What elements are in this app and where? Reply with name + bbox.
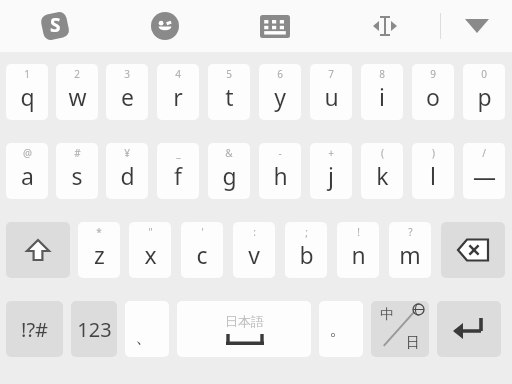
staticText: 123 [77,316,112,343]
button[interactable]: & [208,143,250,199]
staticText: 2 [74,67,80,81]
staticText: ( [381,146,384,160]
button[interactable]: " [129,222,171,278]
staticText: u [324,81,339,112]
button[interactable]: 6 [259,64,301,120]
staticText: g [222,160,237,191]
staticText: c [196,239,208,270]
staticText: ' [201,225,204,239]
button[interactable]: 3 [106,64,148,120]
staticText: z [94,239,105,270]
button[interactable]: 8 [361,64,403,120]
button[interactable]: _ [157,143,199,199]
staticText: s [71,160,83,191]
button[interactable]: # [56,143,98,199]
staticText: 5 [226,67,232,81]
button[interactable]: 7 [310,64,352,120]
staticText: 、 [135,326,153,349]
button[interactable]: Enter [437,301,501,357]
button[interactable]: 5 [208,64,250,120]
staticText: n [351,239,366,270]
button[interactable]: Shift [6,222,70,278]
staticText: m [399,239,421,270]
button[interactable]: 2 [56,64,98,120]
staticText: 0 [481,67,487,81]
staticText: 1 [24,67,30,81]
staticText: ? [408,225,413,239]
staticText: ¥ [124,146,130,160]
staticText: & [225,146,233,160]
button[interactable]: ! [337,222,379,278]
staticText: j [328,160,334,191]
button[interactable]: Emoji [110,0,220,52]
button[interactable]: 4 [157,64,199,120]
staticText: 3 [124,67,130,81]
button[interactable]: 123 [71,301,117,357]
button[interactable]: ' [181,222,223,278]
button[interactable]: : [233,222,275,278]
staticText: k [376,160,389,191]
staticText: e [121,81,134,112]
staticText: 6 [277,67,283,81]
staticText: - [278,146,282,160]
staticText: f [174,160,182,191]
staticText: !?# [21,316,48,343]
staticText: w [68,81,87,112]
staticText: a [21,160,34,191]
button[interactable]: 。 [319,301,363,357]
staticText: x [144,239,157,270]
staticText: ) [432,146,435,160]
button[interactable]: 、 [125,301,169,357]
button[interactable]: Keyboard layout [220,0,330,52]
staticText: S [50,12,61,38]
button[interactable]: 9 [412,64,454,120]
button[interactable]: Backspace [441,222,505,278]
button[interactable]: + [310,143,352,199]
staticText: ! [357,225,360,239]
button[interactable]: ( [361,143,403,199]
button[interactable]: Sogou input [0,0,110,52]
button[interactable]: / [463,143,505,199]
staticText: 中 [380,306,394,324]
button[interactable]: ; [285,222,327,278]
staticText: r [173,81,183,112]
button[interactable]: Hide keyboard [441,0,512,52]
staticText: i [379,81,385,112]
staticText: : [253,225,256,239]
button[interactable]: ) [412,143,454,199]
button[interactable]: @ [6,143,48,199]
staticText: h [273,160,288,191]
staticText: — [473,160,496,191]
staticText: _ [176,146,181,160]
staticText: 7 [328,67,334,81]
button[interactable]: Move cursor [330,0,440,52]
button[interactable]: Switch language [371,301,429,357]
staticText: 日本語 [225,313,264,329]
staticText: q [20,81,35,112]
staticText: @ [23,146,32,160]
staticText: l [430,160,436,191]
button[interactable]: !?# [6,301,63,357]
button[interactable]: ¥ [106,143,148,199]
staticText: v [248,239,260,270]
button[interactable]: Space [177,301,311,357]
button[interactable]: - [259,143,301,199]
staticText: + [328,146,334,160]
button[interactable]: 1 [6,64,48,120]
staticText: p [477,81,492,112]
staticText: d [120,160,135,191]
staticText: 日 [406,334,420,352]
staticText: 4 [175,67,181,81]
button[interactable]: * [78,222,120,278]
button[interactable]: ? [389,222,431,278]
staticText: t [225,81,234,112]
staticText: ; [305,225,308,239]
staticText: " [148,225,153,239]
staticText: # [74,146,81,160]
staticText: 。 [329,318,347,341]
staticText: 9 [430,67,436,81]
button[interactable]: 0 [463,64,505,120]
staticText: y [274,81,286,112]
staticText: o [426,81,440,112]
staticText: / [482,146,486,160]
